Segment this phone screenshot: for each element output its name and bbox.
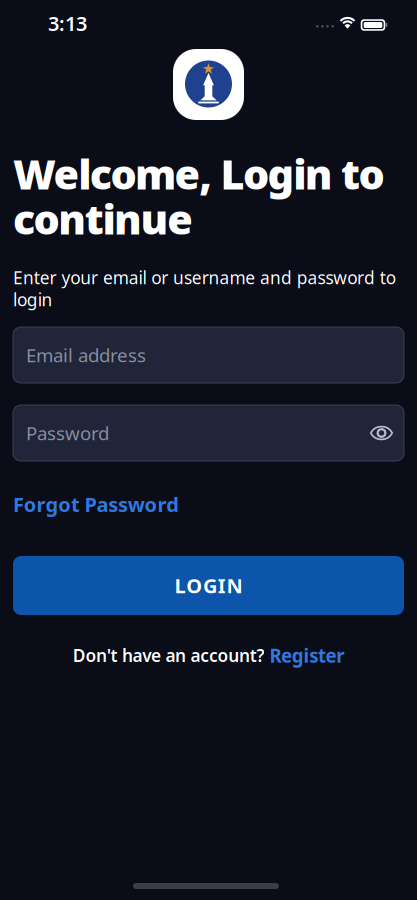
staticText: Welcome, Login to xyxy=(13,146,385,201)
staticText: LOGIN xyxy=(174,572,243,599)
staticText: Enter your email or username and passwor… xyxy=(13,266,396,289)
button[interactable]: Email address xyxy=(13,327,404,383)
button[interactable]: LOGIN xyxy=(13,556,404,615)
staticText: 3:13 xyxy=(48,10,87,37)
staticText: Register xyxy=(269,643,344,668)
staticText: Email address xyxy=(26,343,146,367)
button[interactable] xyxy=(370,425,393,440)
staticText: Don't have an account? xyxy=(73,644,264,667)
staticText: Password xyxy=(26,421,109,445)
button[interactable]: Forgot Password xyxy=(13,491,179,518)
staticText: continue xyxy=(13,191,193,246)
button[interactable]: Register xyxy=(269,643,344,668)
staticText: login xyxy=(13,288,53,311)
button[interactable]: Password xyxy=(13,405,404,461)
staticText: Forgot Password xyxy=(13,491,179,518)
